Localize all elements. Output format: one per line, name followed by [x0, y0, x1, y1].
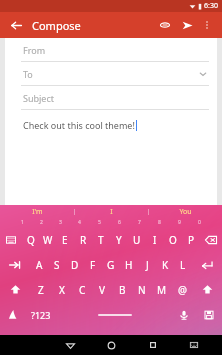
staticText: @ — [178, 283, 187, 297]
button[interactable]: A — [30, 252, 48, 277]
button[interactable]: S — [48, 252, 66, 277]
button[interactable]: Send — [178, 16, 196, 34]
staticText: Check out this cool theme! — [23, 119, 135, 131]
button[interactable]: Back — [50, 335, 91, 355]
staticText: 2 — [40, 219, 43, 226]
staticText: V — [99, 283, 105, 297]
button[interactable]: Settings — [196, 302, 222, 327]
staticText: N — [138, 283, 146, 297]
staticText: 9 — [178, 219, 181, 226]
staticText: 8 — [158, 219, 161, 226]
button[interactable]: L — [174, 252, 192, 277]
staticText: W — [43, 233, 53, 247]
staticText: H — [125, 258, 133, 272]
button[interactable]: I — [75, 205, 148, 218]
staticText: I'm — [32, 207, 43, 217]
staticText: J — [146, 258, 149, 272]
staticText: G — [107, 258, 115, 272]
button[interactable]: Shift — [192, 277, 222, 302]
staticText: ?123 — [31, 309, 51, 321]
button[interactable]: Home — [91, 335, 132, 355]
staticText: I — [153, 233, 157, 247]
button[interactable]: N — [132, 277, 152, 302]
button[interactable]: Backspace — [200, 227, 222, 252]
button[interactable]: U — [128, 227, 146, 252]
staticText: A — [36, 258, 43, 272]
staticText: X — [59, 283, 65, 297]
button[interactable]: I — [146, 227, 164, 252]
staticText: To — [23, 68, 33, 80]
button[interactable]: D — [66, 252, 84, 277]
staticText: Compose — [32, 18, 81, 33]
staticText: E — [62, 233, 68, 247]
button[interactable]: To — [5, 62, 217, 86]
button[interactable]: Subject — [5, 86, 217, 110]
staticText: D — [71, 258, 79, 272]
staticText: 5 — [98, 219, 101, 226]
button[interactable]: From — [5, 38, 217, 62]
staticText: P — [188, 233, 195, 247]
staticText: T — [98, 233, 104, 247]
button[interactable]: Y — [110, 227, 128, 252]
staticText: C — [79, 283, 86, 297]
staticText: 7 — [138, 219, 141, 226]
staticText: B — [119, 283, 126, 297]
button[interactable]: G — [102, 252, 120, 277]
staticText: O — [169, 233, 177, 247]
staticText: 0 — [198, 219, 201, 226]
button[interactable]: W — [39, 227, 56, 252]
button[interactable]: T — [92, 227, 110, 252]
button[interactable]: H — [120, 252, 138, 277]
button[interactable]: Q — [22, 227, 39, 252]
staticText: 6 — [118, 219, 121, 226]
button[interactable]: Enter — [192, 252, 222, 277]
button[interactable]: More options — [199, 17, 215, 33]
button[interactable]: @ — [172, 277, 192, 302]
staticText: I — [110, 207, 113, 217]
staticText: F — [90, 258, 96, 272]
staticText: Z — [38, 283, 44, 297]
staticText: 6:30 — [204, 1, 218, 11]
button[interactable]: V — [92, 277, 112, 302]
button[interactable]: I'm — [0, 205, 74, 218]
button[interactable]: Recents — [132, 335, 173, 355]
button[interactable]: E — [56, 227, 74, 252]
button[interactable]: F — [84, 252, 102, 277]
button[interactable]: Back — [7, 16, 25, 34]
button[interactable]: R — [74, 227, 92, 252]
button[interactable]: M — [152, 277, 172, 302]
staticText: U — [133, 233, 141, 247]
button[interactable]: O — [164, 227, 182, 252]
button[interactable]: Keyboard indicator — [173, 335, 214, 355]
button[interactable]: Tab — [0, 252, 30, 277]
button[interactable]: Theme — [0, 302, 24, 327]
button[interactable]: Shift — [0, 277, 30, 302]
staticText: M — [157, 283, 167, 297]
staticText: Q — [27, 233, 35, 247]
staticText: From — [23, 44, 46, 56]
button[interactable]: Voice input — [172, 302, 196, 327]
staticText: K — [162, 258, 169, 272]
staticText: 1 — [21, 219, 24, 226]
button[interactable]: Z — [30, 277, 51, 302]
button[interactable]: Attach file — [156, 16, 174, 34]
staticText: 4 — [78, 219, 81, 226]
button[interactable]: J — [138, 252, 156, 277]
staticText: 3 — [59, 219, 62, 226]
button[interactable]: X — [51, 277, 72, 302]
staticText: Y — [116, 233, 122, 247]
button[interactable]: B — [112, 277, 132, 302]
staticText: R — [80, 233, 87, 247]
button[interactable]: K — [156, 252, 174, 277]
staticText: S — [54, 258, 60, 272]
button[interactable]: Space — [58, 302, 172, 327]
button[interactable]: ?123 — [24, 302, 58, 327]
button[interactable]: Switch keyboard — [0, 227, 22, 252]
button[interactable]: C — [72, 277, 92, 302]
staticText: Subject — [23, 92, 55, 104]
button[interactable]: You — [149, 205, 222, 218]
staticText: L — [180, 258, 186, 272]
button[interactable]: P — [182, 227, 200, 252]
staticText: You — [179, 207, 192, 217]
